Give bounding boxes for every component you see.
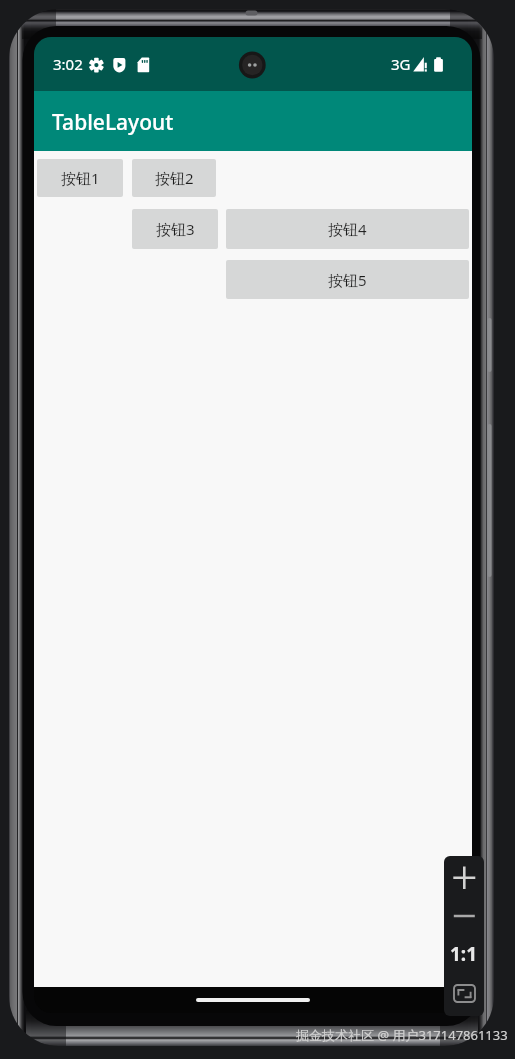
staticText: 按钮3 (156, 219, 195, 239)
button[interactable]: 按钮5 (226, 260, 469, 299)
staticText: 按钮2 (155, 168, 194, 188)
staticText: 掘金技术社区 @ 用户317147861133 (296, 1026, 508, 1044)
button[interactable]: 按钮2 (132, 159, 216, 197)
staticText: 按钮5 (328, 270, 367, 290)
staticText: 按钮4 (328, 219, 367, 239)
staticText: 按钮1 (61, 168, 100, 188)
button[interactable]: 按钮3 (132, 209, 218, 249)
button[interactable]: Fit to window (444, 976, 484, 1010)
button[interactable]: 按钮1 (37, 159, 123, 197)
button[interactable]: Zoom in (444, 858, 484, 898)
button[interactable]: 按钮4 (226, 209, 469, 249)
staticText: 1:1 (450, 941, 478, 967)
button[interactable]: 1:1 (444, 936, 484, 972)
staticText: 3G (391, 54, 411, 74)
staticText: TableLayout (52, 108, 174, 137)
staticText: 3:02 (53, 54, 83, 74)
button[interactable]: Zoom out (444, 900, 484, 932)
